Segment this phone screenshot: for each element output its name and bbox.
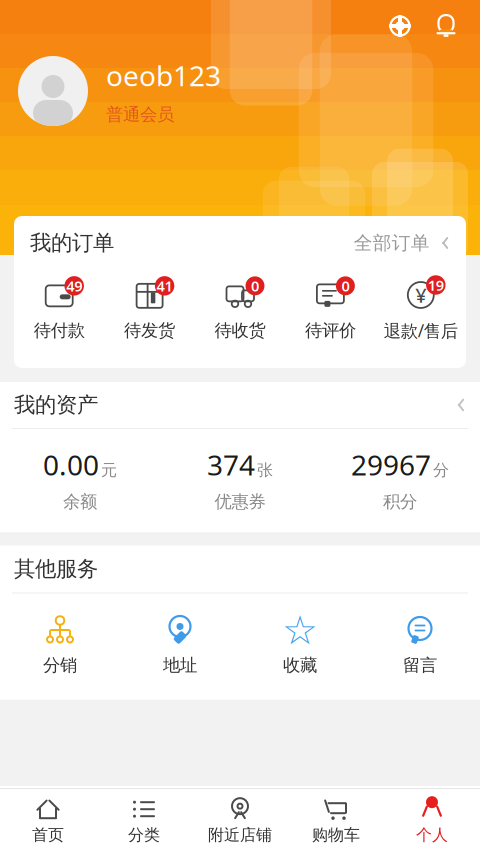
- staticText: 分销: [43, 654, 77, 676]
- staticText: 0: [341, 276, 349, 296]
- staticText: oeob123: [106, 57, 221, 94]
- staticText: 普通会员: [106, 104, 174, 125]
- staticText: 374: [207, 446, 255, 483]
- staticText: 19: [428, 275, 444, 295]
- staticText: 我的资产: [14, 392, 98, 418]
- staticText: 我的订单: [30, 230, 114, 256]
- staticText: 0.00: [43, 446, 99, 483]
- staticText: 留言: [403, 654, 437, 676]
- button[interactable]: 个人: [384, 789, 480, 851]
- staticText: 待付款: [34, 320, 85, 341]
- staticText: 附近店铺: [208, 825, 272, 845]
- staticText: 首页: [32, 825, 64, 845]
- staticText: 分: [433, 460, 449, 480]
- staticText: 0: [251, 276, 259, 296]
- button[interactable]: 49: [14, 275, 104, 345]
- button[interactable]: 首页: [0, 789, 96, 851]
- staticText: ☆: [282, 608, 318, 653]
- staticText: 41: [157, 276, 173, 296]
- staticText: 待评价: [305, 320, 356, 341]
- staticText: 分类: [128, 825, 160, 845]
- staticText: 购物车: [312, 825, 360, 845]
- button[interactable]: 0: [195, 275, 285, 345]
- button[interactable]: 0: [285, 275, 376, 345]
- staticText: 个人: [416, 825, 448, 845]
- staticText: 地址: [163, 654, 197, 676]
- staticText: ¥: [415, 282, 426, 308]
- staticText: 优惠券: [214, 491, 265, 512]
- button[interactable]: Avatar: [18, 56, 88, 126]
- button[interactable]: 374: [160, 446, 320, 512]
- staticText: 49: [66, 276, 82, 296]
- staticText: 29967: [351, 446, 431, 483]
- button[interactable]: 分销: [0, 611, 120, 680]
- button[interactable]: ¥: [376, 274, 466, 346]
- staticText: 退款/售后: [384, 319, 458, 342]
- staticText: 待发货: [124, 320, 175, 341]
- staticText: 元: [101, 460, 117, 480]
- button[interactable]: 29967: [320, 446, 480, 512]
- button[interactable]: Settings: [382, 8, 418, 44]
- button[interactable]: 0.00: [0, 446, 160, 512]
- button[interactable]: 留言: [360, 611, 480, 680]
- button[interactable]: 41: [104, 275, 195, 345]
- button[interactable]: 分类: [96, 789, 192, 851]
- staticText: 全部订单: [354, 231, 430, 254]
- button[interactable]: 我的资产: [0, 382, 480, 428]
- button[interactable]: 附近店铺: [192, 789, 288, 851]
- staticText: 积分: [383, 491, 417, 512]
- button[interactable]: Notifications: [428, 8, 464, 44]
- button[interactable]: 购物车: [288, 789, 384, 851]
- staticText: 其他服务: [14, 556, 98, 582]
- button[interactable]: 我的订单: [14, 216, 466, 270]
- staticText: 张: [257, 460, 273, 480]
- button[interactable]: 地址: [120, 611, 240, 680]
- staticText: 余额: [63, 491, 97, 512]
- button[interactable]: ☆: [240, 611, 360, 680]
- staticText: 待收货: [214, 320, 265, 341]
- staticText: 收藏: [283, 654, 317, 676]
